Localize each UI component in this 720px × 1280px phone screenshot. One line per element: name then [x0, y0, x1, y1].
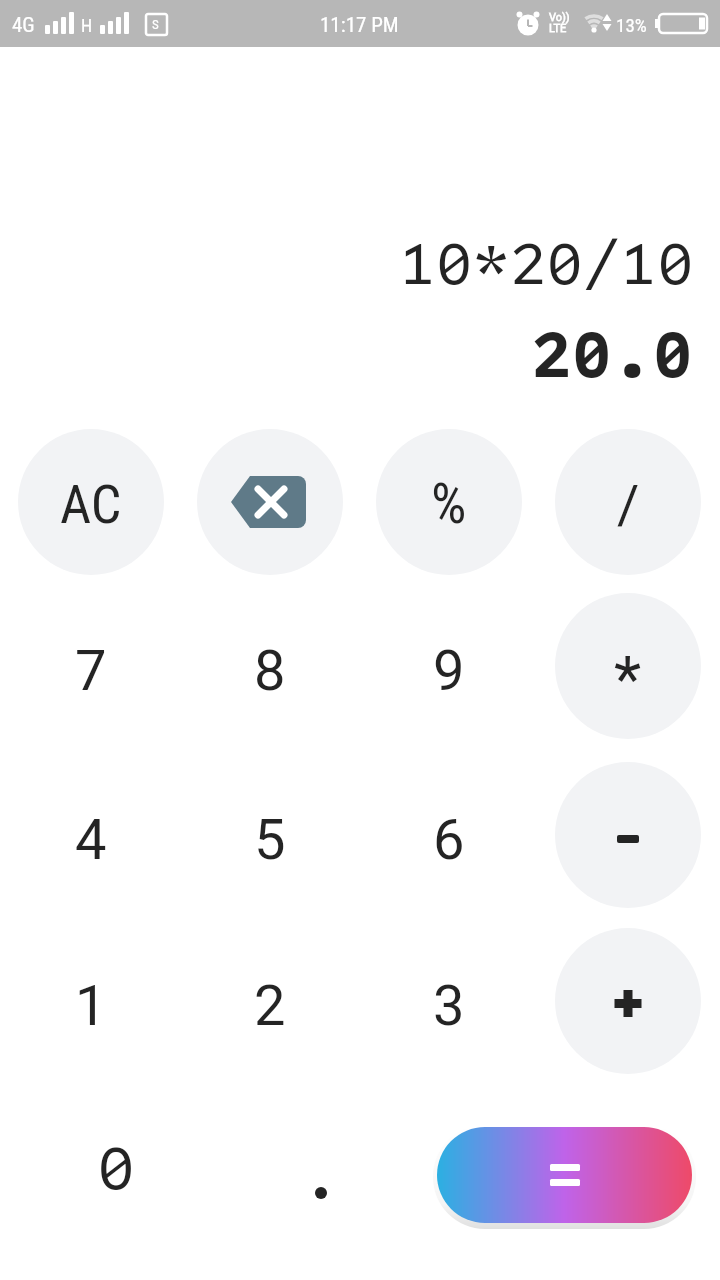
- staticText: /: [617, 473, 640, 536]
- staticText: S: [152, 17, 159, 32]
- staticText: 11:17 PM: [320, 13, 399, 38]
- button[interactable]: /: [555, 429, 701, 575]
- staticText: H: [81, 15, 93, 36]
- button[interactable]: [248, 1104, 394, 1250]
- staticText: 4G: [12, 13, 35, 38]
- staticText: 6: [433, 807, 465, 873]
- button[interactable]: [555, 928, 701, 1074]
- staticText: 4: [75, 807, 107, 873]
- button[interactable]: 7: [18, 593, 164, 739]
- staticText: Vo)): [549, 11, 570, 24]
- staticText: %: [431, 471, 467, 537]
- staticText: *: [614, 643, 642, 717]
- staticText: 10*20/10: [399, 219, 694, 302]
- button[interactable]: [197, 429, 343, 575]
- button[interactable]: 3: [376, 928, 522, 1074]
- staticText: AC: [60, 473, 122, 536]
- button[interactable]: [555, 762, 701, 908]
- staticText: 5: [254, 807, 286, 873]
- button[interactable]: 0: [43, 1091, 189, 1237]
- staticText: 3: [433, 973, 465, 1039]
- button[interactable]: AC: [18, 429, 164, 575]
- button[interactable]: 8: [197, 593, 343, 739]
- staticText: 0: [97, 1121, 136, 1207]
- button[interactable]: *: [555, 593, 701, 739]
- button[interactable]: 5: [197, 762, 343, 908]
- button[interactable]: 1: [18, 928, 164, 1074]
- button[interactable]: 6: [376, 762, 522, 908]
- staticText: 1: [75, 973, 107, 1039]
- staticText: 7: [75, 638, 107, 704]
- staticText: 9: [433, 638, 465, 704]
- button[interactable]: [437, 1127, 692, 1223]
- button[interactable]: 4: [18, 762, 164, 908]
- staticText: 8: [254, 638, 286, 704]
- button[interactable]: %: [376, 429, 522, 575]
- staticText: LTE: [549, 22, 567, 35]
- button[interactable]: 2: [197, 928, 343, 1074]
- button[interactable]: 9: [376, 593, 522, 739]
- staticText: 13%: [616, 14, 647, 36]
- staticText: 2: [254, 973, 286, 1039]
- staticText: 20.0: [531, 305, 694, 396]
